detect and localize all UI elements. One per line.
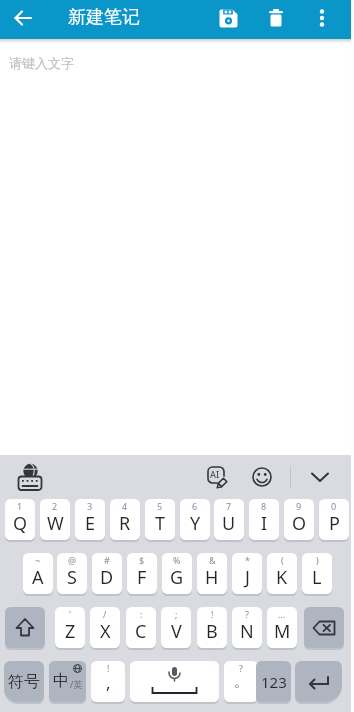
button[interactable]: ?: [224, 661, 258, 702]
staticText: Y: [190, 511, 201, 536]
button[interactable]: 9: [284, 499, 314, 540]
button[interactable]: :: [126, 607, 156, 648]
staticText: 5: [157, 500, 163, 512]
staticText: A: [32, 565, 44, 590]
staticText: 8: [261, 500, 267, 512]
staticText: !: [211, 608, 214, 620]
button[interactable]: [260, 2, 292, 34]
staticText: R: [119, 511, 131, 536]
staticText: C: [135, 619, 147, 644]
button[interactable]: (: [267, 553, 297, 594]
staticText: I: [261, 511, 268, 536]
staticText: G: [170, 565, 184, 590]
button[interactable]: [5, 607, 45, 648]
button[interactable]: &: [197, 553, 227, 594]
staticText: E: [85, 511, 96, 536]
button[interactable]: @: [57, 553, 87, 594]
staticText: 4: [122, 500, 128, 512]
button[interactable]: $: [127, 553, 157, 594]
button[interactable]: ?: [232, 607, 262, 648]
staticText: M: [274, 619, 291, 644]
staticText: W: [47, 511, 64, 536]
staticText: 6: [192, 500, 198, 512]
button[interactable]: #: [92, 553, 122, 594]
staticText: ?: [239, 662, 243, 674]
staticText: ,: [106, 671, 111, 694]
staticText: 9: [296, 500, 302, 512]
button[interactable]: …: [267, 607, 297, 648]
staticText: /: [103, 608, 107, 620]
button[interactable]: 7: [214, 499, 244, 540]
button[interactable]: [304, 607, 344, 648]
staticText: ?: [245, 608, 249, 620]
staticText: :: [140, 608, 143, 620]
staticText: U: [222, 511, 236, 536]
staticText: ;: [175, 608, 178, 620]
button[interactable]: ~: [23, 553, 53, 594]
staticText: Z: [65, 619, 76, 644]
button[interactable]: 6: [180, 499, 210, 540]
button[interactable]: ;: [161, 607, 191, 648]
staticText: N: [240, 619, 254, 644]
button[interactable]: /: [90, 607, 120, 648]
button[interactable]: 中: [49, 661, 86, 702]
staticText: F: [137, 565, 147, 590]
staticText: 新建笔记: [68, 6, 140, 29]
button[interactable]: 4: [110, 499, 140, 540]
staticText: ': [69, 608, 72, 620]
staticText: ): [316, 554, 319, 566]
staticText: …: [278, 608, 286, 620]
button[interactable]: [248, 463, 276, 491]
button[interactable]: 3: [75, 499, 105, 540]
button[interactable]: 8: [249, 499, 279, 540]
staticText: D: [100, 565, 114, 590]
button[interactable]: [304, 463, 336, 491]
staticText: $: [139, 554, 145, 566]
staticText: 123: [261, 672, 287, 692]
staticText: T: [155, 511, 166, 536]
button[interactable]: [212, 2, 244, 34]
button[interactable]: !: [197, 607, 227, 648]
button[interactable]: 符号: [4, 661, 44, 702]
staticText: 。: [234, 673, 248, 691]
staticText: AI: [210, 468, 220, 480]
staticText: O: [292, 511, 307, 536]
staticText: 中: [53, 671, 69, 691]
button[interactable]: ': [55, 607, 85, 648]
staticText: 请键入文字: [9, 55, 74, 71]
button[interactable]: ): [302, 553, 332, 594]
staticText: V: [171, 619, 182, 644]
button[interactable]: [10, 459, 50, 495]
button[interactable]: [306, 2, 338, 34]
staticText: *: [245, 554, 250, 566]
button[interactable]: [130, 661, 219, 702]
staticText: X: [100, 619, 111, 644]
button[interactable]: *: [232, 553, 262, 594]
button[interactable]: 0: [319, 499, 349, 540]
button[interactable]: %: [162, 553, 192, 594]
staticText: 0: [331, 500, 337, 512]
button[interactable]: [6, 2, 40, 36]
staticText: Q: [13, 511, 28, 536]
staticText: H: [205, 565, 219, 590]
button[interactable]: 1: [5, 499, 35, 540]
staticText: 1: [17, 500, 23, 512]
button[interactable]: 5: [145, 499, 175, 540]
staticText: %: [173, 554, 181, 566]
button[interactable]: 2: [40, 499, 70, 540]
staticText: S: [67, 565, 77, 590]
staticText: P: [329, 511, 340, 536]
button[interactable]: 123: [256, 661, 291, 702]
button[interactable]: !: [91, 661, 125, 702]
staticText: !: [107, 662, 110, 674]
staticText: B: [206, 619, 218, 644]
button[interactable]: AI: [202, 463, 234, 491]
button[interactable]: [295, 661, 342, 702]
staticText: 符号: [8, 672, 40, 692]
staticText: ~: [35, 554, 41, 566]
staticText: (: [281, 554, 284, 566]
staticText: @: [68, 554, 77, 566]
staticText: /英: [70, 678, 83, 690]
staticText: &: [209, 554, 216, 566]
staticText: K: [276, 565, 288, 590]
